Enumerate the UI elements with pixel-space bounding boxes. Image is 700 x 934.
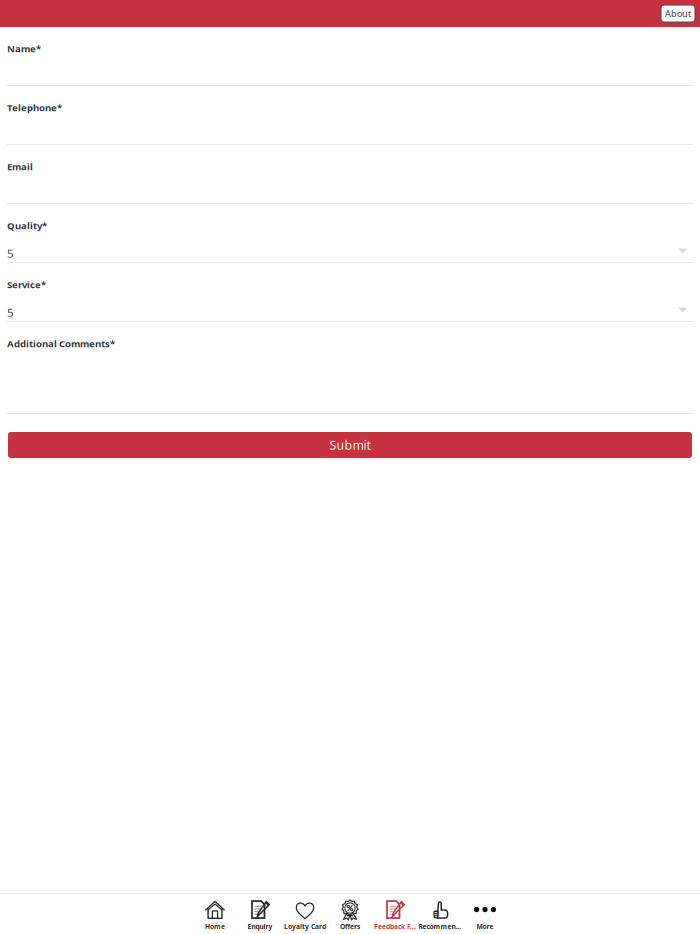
staticText: More [476, 922, 493, 931]
button[interactable]: Recommen… [417, 896, 462, 934]
staticText: Submit [329, 437, 370, 453]
button[interactable]: Submit [8, 432, 692, 458]
staticText: Offers [340, 922, 360, 931]
staticText: Quality* [7, 219, 47, 232]
staticText: About [665, 7, 691, 20]
staticText: Recommen… [418, 922, 461, 931]
staticText: Loyalty Card [284, 922, 326, 931]
staticText: Enquiry [247, 922, 272, 931]
button[interactable]: More [462, 896, 507, 934]
button[interactable]: Quality* [0, 204, 700, 263]
button[interactable]: Enquiry [237, 896, 282, 934]
button[interactable]: About [661, 5, 695, 22]
staticText: Feedback F… [374, 922, 416, 931]
staticText: Home [205, 922, 225, 931]
staticText: Email [7, 160, 33, 173]
button[interactable]: Service* [0, 263, 700, 322]
button[interactable]: Loyalty Card [282, 896, 327, 934]
button[interactable]: Feedback F… [372, 896, 417, 934]
staticText: Name* [7, 42, 41, 55]
staticText: Service* [7, 278, 46, 291]
button[interactable]: Offers [327, 896, 372, 934]
staticText: 5 [7, 245, 14, 261]
staticText: 5 [7, 304, 14, 320]
staticText: Additional Comments* [7, 337, 115, 350]
staticText: Telephone* [7, 101, 62, 114]
button[interactable]: Home [192, 896, 237, 934]
